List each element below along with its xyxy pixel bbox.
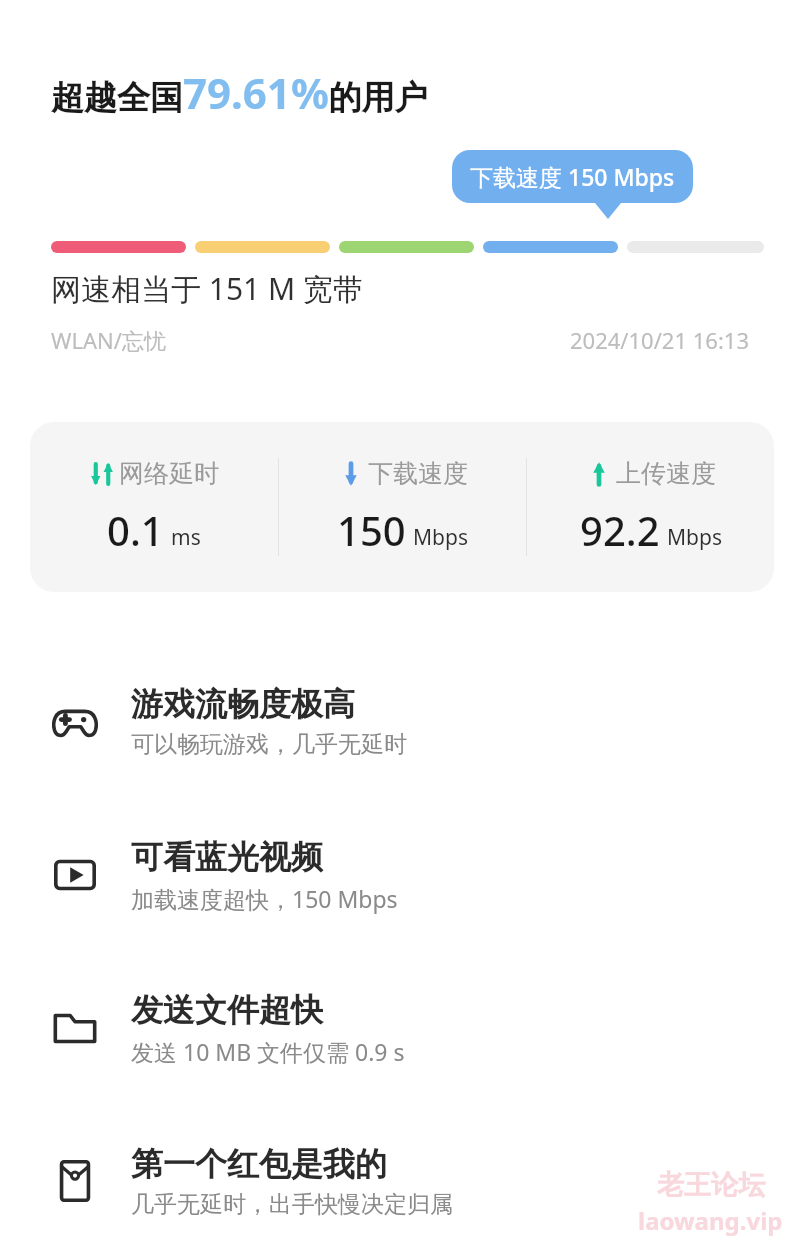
staticText: 0.1 <box>107 503 164 557</box>
staticText: 第一个红包是我的 <box>131 1144 387 1184</box>
staticText: 92.2 <box>580 503 660 557</box>
other: 第一个红包是我的 <box>51 1157 99 1205</box>
button[interactable]: 下载速度 <box>279 422 526 592</box>
staticText: 150 <box>337 503 406 557</box>
staticText: laowang.vip <box>638 1204 783 1237</box>
other: 游戏流畅度极高 <box>51 697 99 745</box>
staticText: 上传速度 <box>616 458 716 489</box>
staticText: 网络延时 <box>119 458 219 489</box>
other: 可看蓝光视频 <box>51 851 99 899</box>
button[interactable]: 第一个红包是我的 <box>0 1136 800 1226</box>
button[interactable]: 网络延时 <box>30 422 774 592</box>
button[interactable]: 发送文件超快 <box>0 983 800 1073</box>
button[interactable]: 下载速度 150 Mbps <box>452 150 693 203</box>
staticText: 可以畅玩游戏，几乎无延时 <box>131 730 407 759</box>
staticText: 下载速度 150 Mbps <box>470 161 675 192</box>
staticText: Mbps <box>413 523 468 552</box>
staticText: 2024/10/21 16:13 <box>570 325 749 355</box>
staticText: ms <box>171 523 201 552</box>
staticText: 游戏流畅度极高 <box>131 684 355 724</box>
button[interactable]: 可看蓝光视频 <box>0 830 800 920</box>
staticText: 超越全国79.61%的用户 <box>51 64 428 121</box>
staticText: 加载速度超快，150 Mbps <box>131 883 398 914</box>
staticText: 几乎无延时，出手快慢决定归属 <box>131 1190 453 1219</box>
staticText: WLAN/忘忧 <box>51 325 166 355</box>
staticText: 发送文件超快 <box>131 990 323 1030</box>
button[interactable]: 游戏流畅度极高 <box>0 676 800 766</box>
staticText: 下载速度 <box>368 458 468 489</box>
staticText: Mbps <box>667 523 722 552</box>
other: 发送文件超快 <box>51 1004 99 1052</box>
button[interactable]: 网络延时 <box>30 422 278 592</box>
staticText: 可看蓝光视频 <box>131 837 323 877</box>
staticText: 发送 10 MB 文件仅需 0.9 s <box>131 1036 405 1067</box>
staticText: 老王论坛 <box>657 1168 765 1202</box>
button[interactable]: 上传速度 <box>527 422 774 592</box>
staticText: 网速相当于 151 M 宽带 <box>51 268 364 309</box>
